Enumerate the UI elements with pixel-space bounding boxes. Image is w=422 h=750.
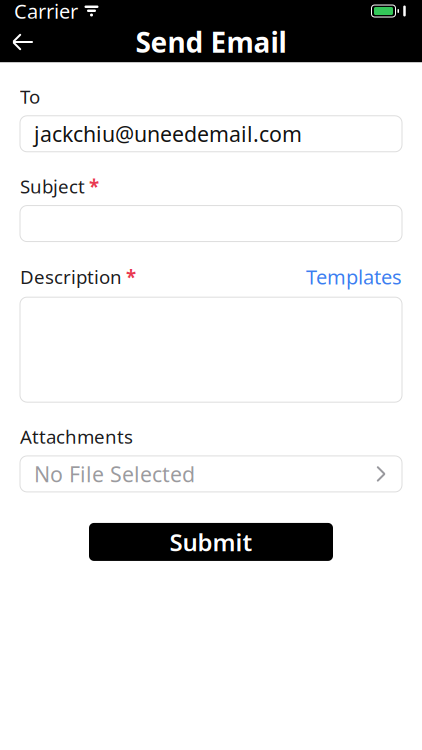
staticText: No File Selected (34, 460, 195, 488)
staticText: Submit (169, 526, 252, 558)
staticText: Carrier (14, 0, 78, 24)
staticText: Send Email (135, 23, 286, 61)
button[interactable]: No File Selected (20, 456, 402, 492)
staticText: * (89, 174, 99, 199)
staticText: Subject (20, 174, 85, 199)
staticText: Description (20, 264, 122, 289)
staticText: Templates (306, 264, 402, 290)
staticText: Attachments (20, 424, 133, 449)
button[interactable]: Back (0, 22, 46, 62)
staticText: jackchiu@uneedemail.com (34, 120, 302, 148)
button[interactable]: Submit (89, 523, 333, 561)
button[interactable]: Templates (306, 264, 402, 290)
staticText: * (126, 264, 136, 289)
staticText: To (20, 84, 40, 109)
